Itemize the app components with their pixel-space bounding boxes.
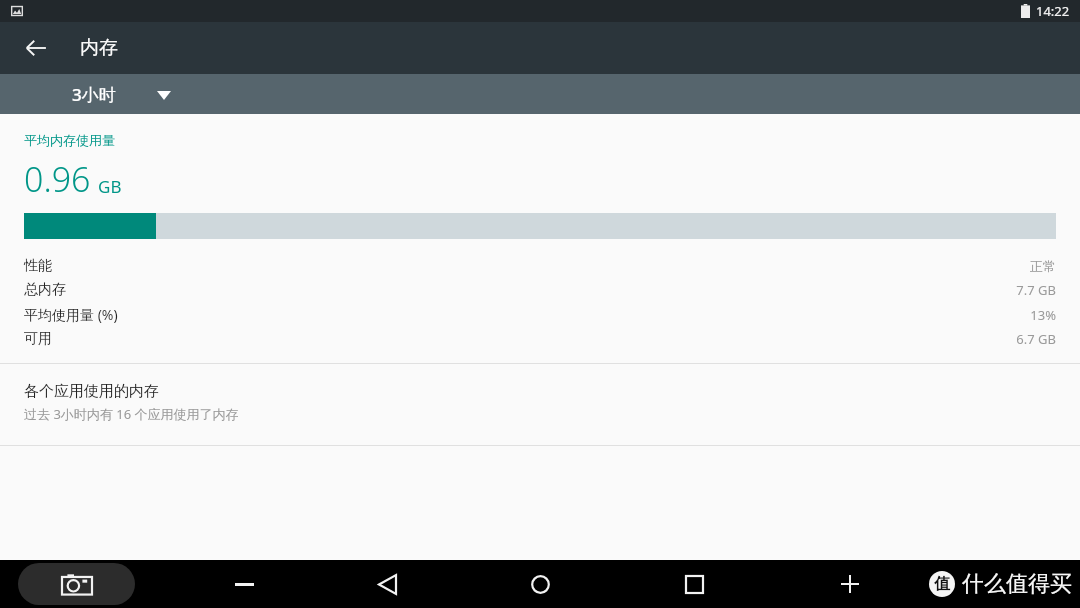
staticText: 过去 3小时内有 16 个应用使用了内存 xyxy=(24,405,239,423)
button[interactable]: 可用 xyxy=(0,327,1080,351)
staticText: 总内存 xyxy=(24,281,66,299)
staticText: 平均使用量 (%) xyxy=(24,305,118,324)
staticText: 6.7 GB xyxy=(1016,330,1056,348)
button[interactable]: 性能 xyxy=(0,254,1080,278)
staticText: 值 xyxy=(934,574,950,594)
staticText: GB xyxy=(98,175,122,198)
staticText: 正常 xyxy=(1030,258,1056,274)
button[interactable]: Add xyxy=(820,560,880,608)
staticText: 3小时 xyxy=(72,83,116,106)
button[interactable]: Home xyxy=(510,560,570,608)
button[interactable]: 平均使用量 (%) xyxy=(0,302,1080,327)
staticText: 可用 xyxy=(24,330,52,348)
staticText: 性能 xyxy=(24,257,52,275)
staticText: 内存 xyxy=(80,36,118,60)
staticText: 各个应用使用的内存 xyxy=(24,382,159,401)
staticText: 平均内存使用量 xyxy=(24,132,115,148)
button[interactable]: Back xyxy=(357,560,417,608)
staticText: 7.7 GB xyxy=(1016,281,1056,299)
button[interactable]: Recent apps xyxy=(664,560,724,608)
button[interactable]: Camera xyxy=(18,563,135,605)
button[interactable]: 3小时 xyxy=(0,74,1080,114)
button[interactable]: 各个应用使用的内存 xyxy=(0,382,1080,429)
button[interactable]: 总内存 xyxy=(0,278,1080,302)
staticText: 13% xyxy=(1030,306,1056,324)
button[interactable]: Back xyxy=(16,28,56,68)
staticText: 0.96 xyxy=(24,156,91,202)
button[interactable]: Minimize xyxy=(214,560,274,608)
staticText: 什么值得买 xyxy=(962,570,1072,598)
staticText: 14:22 xyxy=(1036,2,1070,20)
